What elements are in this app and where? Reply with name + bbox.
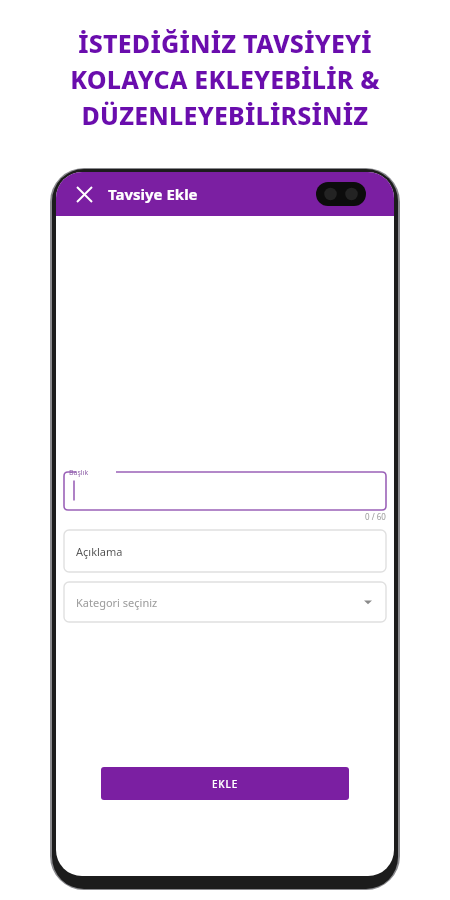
button[interactable]: Başlık — [64, 470, 386, 510]
staticText: KOLAYCA EKLEYEBİLİR & — [14, 62, 436, 96]
staticText: 0 / 60 — [365, 511, 386, 522]
staticText: İSTEDİĞİNİZ TAVSİYEYİ — [14, 26, 436, 60]
staticText: Kategori seçiniz — [76, 595, 158, 610]
button[interactable]: Kapat — [68, 178, 100, 210]
staticText: Tavsiye Ekle — [108, 184, 198, 204]
button[interactable]: Kategori seçiniz — [64, 582, 386, 622]
staticText: Başlık — [69, 468, 89, 478]
button[interactable]: EKLE — [101, 767, 349, 800]
staticText: DÜZENLEYEBİLİRSİNİZ — [14, 98, 436, 132]
staticText: EKLE — [212, 777, 238, 791]
staticText: Açıklama — [76, 544, 123, 559]
button[interactable]: Açıklama — [64, 530, 386, 572]
